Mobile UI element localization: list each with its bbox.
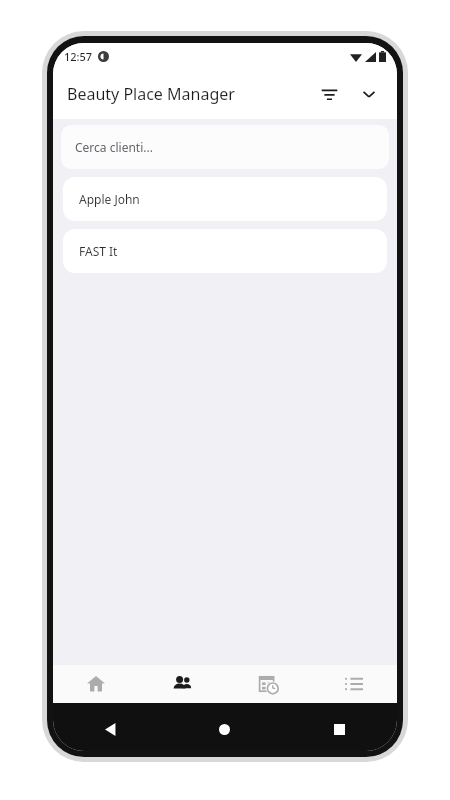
button[interactable]: Cerca clienti... <box>61 125 389 169</box>
staticText: 12:57 <box>64 49 93 64</box>
button[interactable]: FAST It <box>63 229 387 273</box>
staticText: Apple John <box>79 191 140 207</box>
staticText: Cerca clienti... <box>75 139 153 155</box>
button[interactable]: Apple John <box>63 177 387 221</box>
button[interactable]: Clients <box>139 665 225 703</box>
button[interactable]: Recent apps <box>282 707 397 751</box>
button[interactable]: Back <box>53 707 167 751</box>
button[interactable]: Appointments <box>225 665 311 703</box>
button[interactable]: List <box>311 665 397 703</box>
button[interactable]: Home <box>167 707 282 751</box>
button[interactable]: Filter <box>309 74 349 114</box>
button[interactable]: Expand <box>349 74 389 114</box>
button[interactable]: Home <box>53 665 139 703</box>
staticText: FAST It <box>79 243 118 259</box>
staticText: Beauty Place Manager <box>67 83 235 105</box>
